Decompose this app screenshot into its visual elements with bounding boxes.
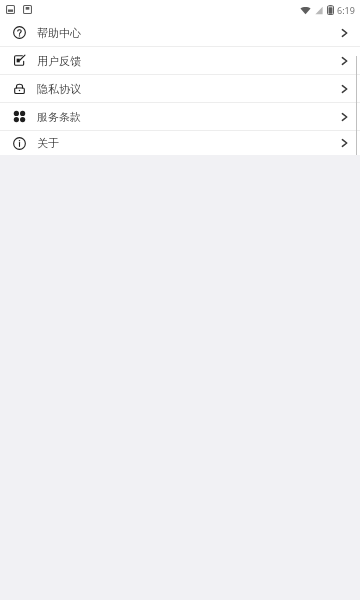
button[interactable]: 用户反馈	[0, 47, 360, 74]
staticText: 用户反馈	[37, 54, 81, 68]
staticText: 服务条款	[37, 110, 81, 124]
staticText: 帮助中心	[37, 26, 81, 40]
staticText: 关于	[37, 136, 59, 150]
button[interactable]: 服务条款	[0, 103, 360, 130]
button[interactable]: 隐私协议	[0, 75, 360, 102]
button[interactable]: 关于	[0, 131, 360, 155]
staticText: 6:19	[337, 4, 355, 16]
button[interactable]: 帮助中心	[0, 19, 360, 46]
staticText: 隐私协议	[37, 82, 81, 96]
